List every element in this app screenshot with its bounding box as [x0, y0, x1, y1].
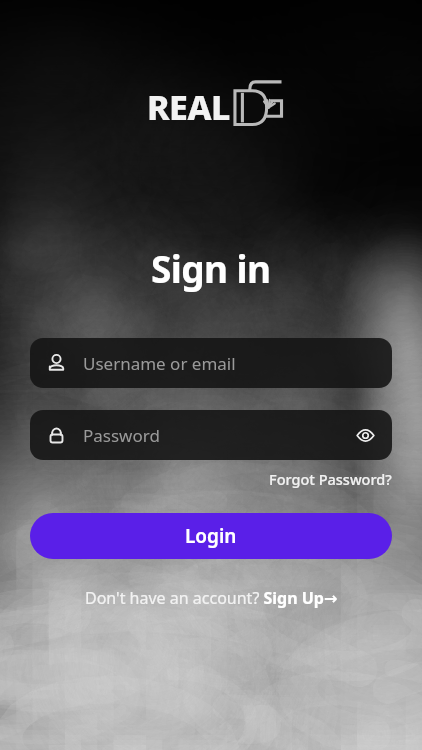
other: REAL DG logo: [147, 84, 282, 130]
button[interactable]: Show password: [352, 422, 378, 448]
button[interactable]: Username or email: [30, 338, 392, 388]
staticText: Username or email: [83, 352, 236, 375]
staticText: Don't have an account? Sign Up→: [85, 587, 338, 609]
button[interactable]: Login: [30, 513, 392, 559]
staticText: Password: [83, 424, 160, 447]
button[interactable]: Forgot Password?: [267, 466, 394, 492]
staticText: Login: [185, 523, 237, 549]
button[interactable]: Password: [30, 410, 392, 460]
staticText: REAL: [147, 84, 230, 130]
staticText: Forgot Password?: [269, 469, 392, 489]
button[interactable]: Don't have an account? Sign Up→: [79, 583, 344, 613]
staticText: Sign in: [151, 243, 271, 293]
